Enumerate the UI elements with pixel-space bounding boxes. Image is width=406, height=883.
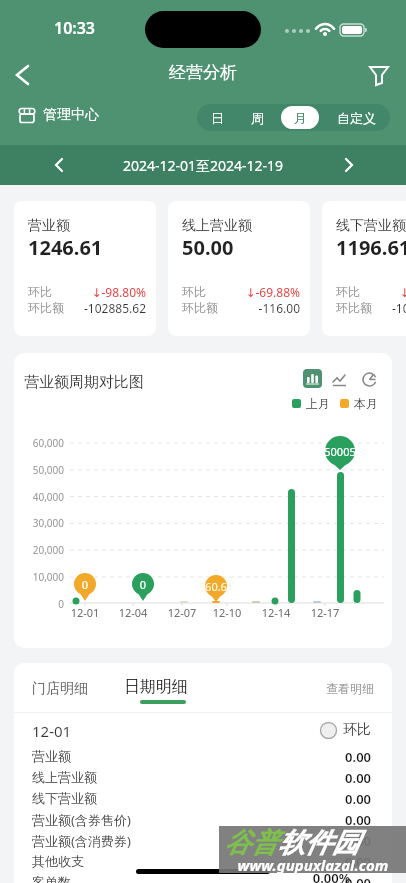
button[interactable] <box>362 58 396 92</box>
staticText: 12-01 <box>32 721 72 741</box>
staticText: 营业额(含券售价) <box>32 811 131 829</box>
staticText: 线下营业额 <box>336 217 406 235</box>
button[interactable]: 线下营业额 <box>322 201 406 336</box>
staticText: -102769.62 <box>322 300 406 316</box>
button[interactable] <box>361 370 379 388</box>
staticText: 环比额 <box>336 300 372 315</box>
button[interactable] <box>48 153 72 177</box>
staticText: 管理中心 <box>43 106 99 124</box>
staticText: 60,000 <box>14 436 64 450</box>
button[interactable]: 自定义 <box>327 106 386 129</box>
staticText: 2024-12-01至2024-12-19 <box>0 156 406 175</box>
staticText: www.gupuxlazal.com <box>221 855 405 875</box>
button[interactable]: 月 <box>281 106 319 129</box>
staticText: 0.00 <box>14 748 371 766</box>
staticText: 20,000 <box>14 543 64 557</box>
staticText: 0.00 <box>14 811 371 829</box>
staticText: 环比额 <box>182 300 218 315</box>
staticText: 自定义 <box>337 110 376 126</box>
staticText: 560.61 <box>186 579 246 594</box>
staticText: ↓-69.88% <box>168 284 300 300</box>
staticText: 30,000 <box>14 516 64 530</box>
button[interactable]: 门店明细 <box>32 680 88 698</box>
button[interactable] <box>331 371 349 389</box>
staticText: 上月 <box>306 396 330 411</box>
staticText: 经营分析 <box>0 62 406 83</box>
button[interactable]: 线上营业额 <box>168 201 310 336</box>
button[interactable]: 环比 <box>320 721 371 739</box>
staticText: -116.00 <box>168 300 300 316</box>
staticText: 环比 <box>28 284 52 299</box>
staticText: 环比 <box>182 284 206 299</box>
button[interactable]: 管理中心 <box>16 104 99 126</box>
staticText: 0.00 <box>14 769 371 787</box>
button[interactable]: 查看明细 <box>326 681 374 696</box>
staticText: 12-17 <box>305 605 345 620</box>
staticText: ↓-98.80% <box>14 284 146 300</box>
staticText: 1196.61 <box>336 234 406 261</box>
staticText: 软件园 <box>278 826 359 860</box>
staticText: 10:33 <box>54 17 96 39</box>
staticText: 12-01 <box>65 605 105 620</box>
staticText: 1246.61 <box>28 234 103 261</box>
staticText: 0 <box>70 577 100 592</box>
staticText: 营业额 <box>28 217 70 235</box>
staticText: 其他收支 <box>32 853 84 869</box>
button[interactable]: 日期明细 <box>124 677 188 697</box>
staticText: 环比 <box>343 721 371 739</box>
staticText: 40,000 <box>14 490 64 504</box>
staticText: 线下营业额 <box>32 790 97 806</box>
staticText: 12-07 <box>162 605 202 620</box>
button[interactable]: 日 <box>201 106 233 129</box>
staticText: 12-14 <box>256 605 296 620</box>
staticText: 0.00 <box>14 790 371 808</box>
staticText: 12-04 <box>113 605 153 620</box>
staticText: 营业额 <box>32 748 71 764</box>
staticText: 周 <box>251 110 264 126</box>
staticText: 线上营业额 <box>182 217 252 235</box>
button[interactable] <box>303 369 322 388</box>
staticText: 营业额周期对比图 <box>24 373 144 392</box>
button[interactable] <box>6 58 40 92</box>
staticText: 0.00% <box>0 869 350 883</box>
staticText: 线上营业额 <box>32 769 97 785</box>
staticText: 0 <box>14 597 64 611</box>
staticText: 0 <box>128 577 158 592</box>
staticText: 0.00 <box>14 853 371 871</box>
staticText: 营业额(含消费券) <box>32 832 131 850</box>
button[interactable]: 营业额 <box>14 201 156 336</box>
staticText: 12-10 <box>207 605 247 620</box>
staticText: 日 <box>211 110 224 126</box>
staticText: 环比额 <box>28 300 64 315</box>
staticText: 谷普 <box>224 826 278 860</box>
staticText: -102885.62 <box>14 300 146 316</box>
staticText: 0.00 <box>14 832 371 850</box>
staticText: 0.00 <box>14 874 371 883</box>
button[interactable]: 周 <box>241 106 273 129</box>
staticText: 环比 <box>336 284 360 299</box>
staticText: 客单数 <box>32 874 71 883</box>
staticText: 50,000 <box>14 463 64 477</box>
staticText: 10,000 <box>14 570 64 584</box>
button[interactable] <box>336 153 360 177</box>
staticText: 月 <box>294 110 307 126</box>
staticText: 50.00 <box>182 234 234 261</box>
staticText: 50005 <box>315 444 365 459</box>
staticText: ↓-98.86% <box>322 284 406 300</box>
staticText: 本月 <box>354 396 378 411</box>
